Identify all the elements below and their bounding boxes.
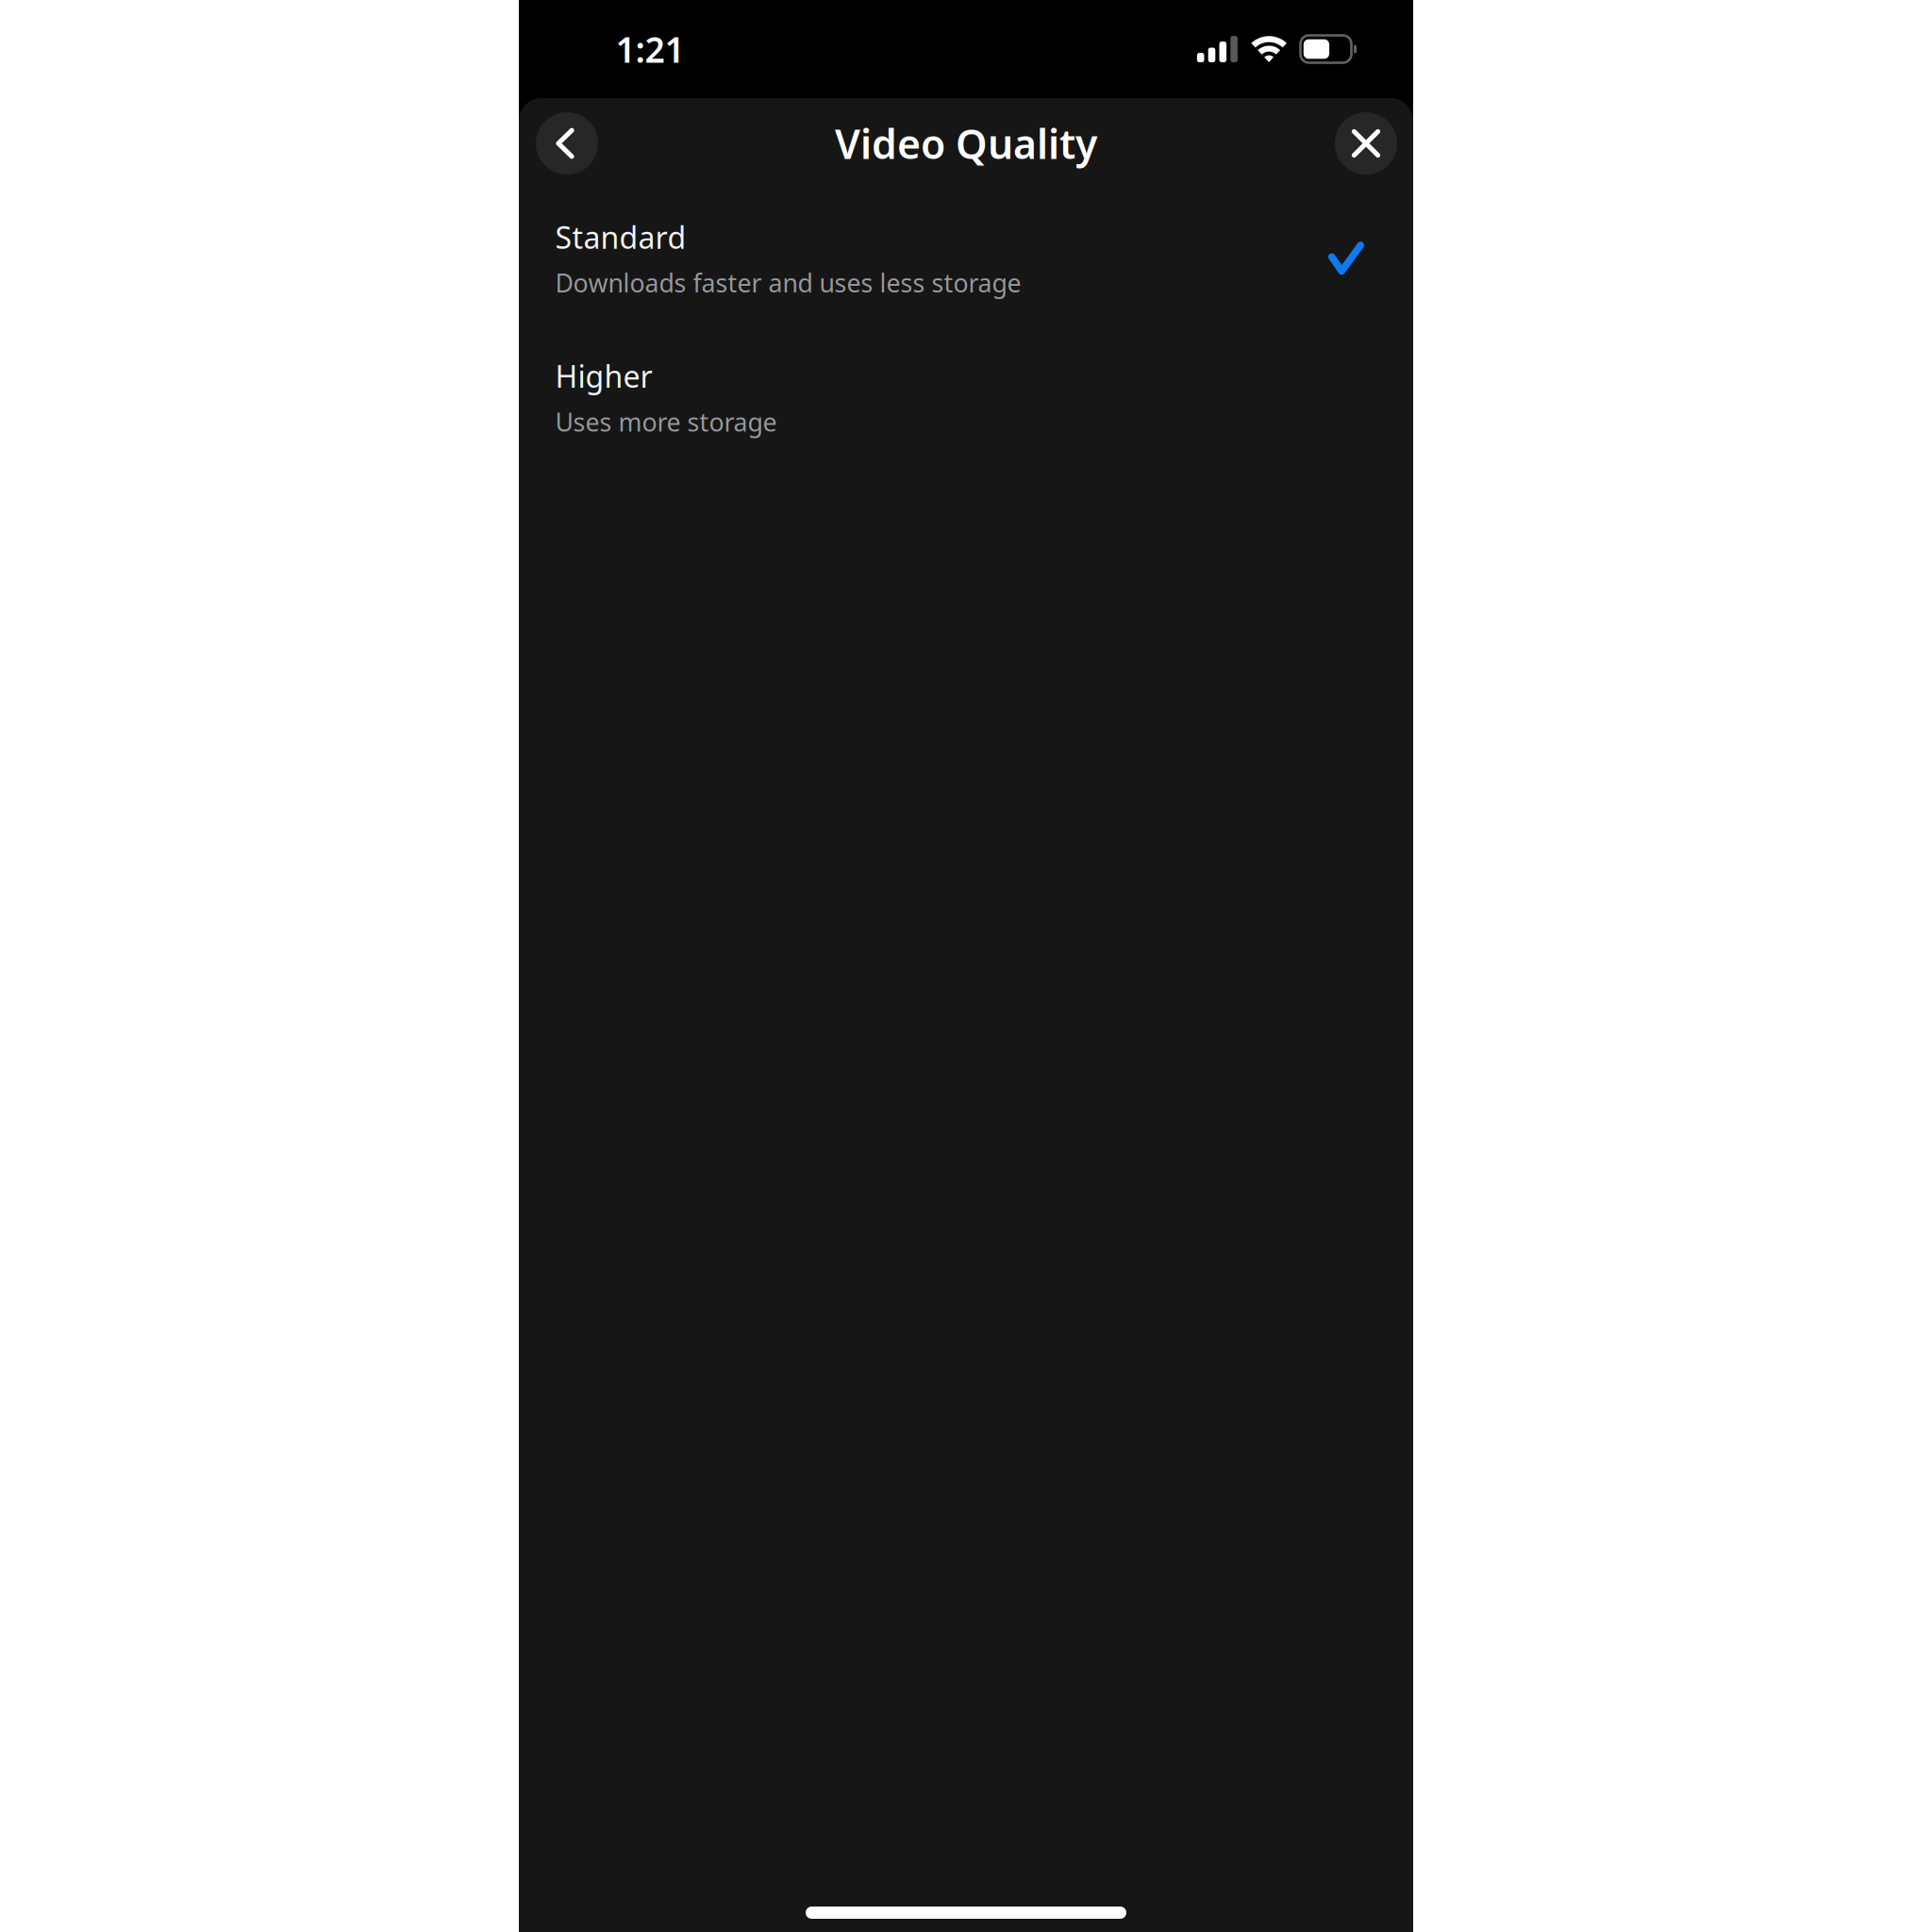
button[interactable]: Higher — [519, 356, 1413, 438]
staticText: Higher — [555, 356, 652, 396]
staticText: 1:21 — [616, 26, 684, 72]
staticText: Video Quality — [835, 117, 1097, 170]
staticText: Downloads faster and uses less storage — [555, 266, 1021, 299]
staticText: Standard — [555, 217, 686, 257]
button[interactable]: Back — [536, 112, 598, 175]
button[interactable]: Standard — [519, 217, 1413, 299]
button[interactable]: Close — [1335, 112, 1397, 175]
staticText: Uses more storage — [555, 405, 777, 438]
